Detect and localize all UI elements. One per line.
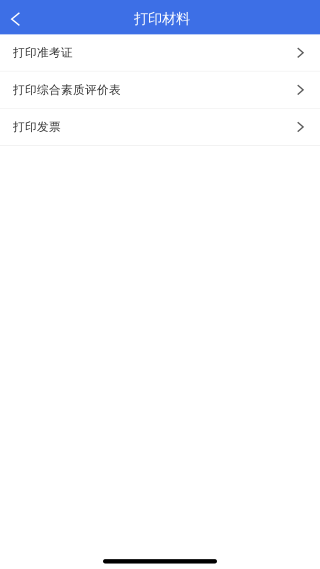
button[interactable]: 打印发票 [0,109,320,146]
button[interactable]: 打印综合素质评价表 [0,72,320,109]
button[interactable]: Back [0,0,37,35]
staticText: 打印材料 [134,10,190,28]
staticText: 打印准考证 [13,45,73,60]
button[interactable]: 打印准考证 [0,35,320,72]
staticText: 打印发票 [13,120,61,134]
staticText: 打印综合素质评价表 [13,82,121,97]
